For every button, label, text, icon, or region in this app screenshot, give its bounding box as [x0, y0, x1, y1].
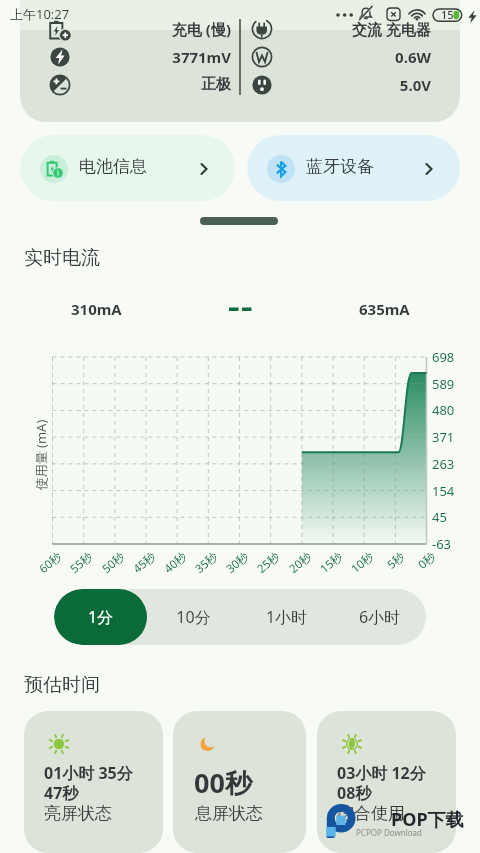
staticText: 263 — [432, 455, 468, 473]
staticText: 综合使用 — [337, 803, 405, 824]
staticText: 15 — [441, 7, 454, 22]
staticText: 蓝牙设备 — [306, 156, 374, 177]
staticText: 635mA — [359, 299, 410, 319]
staticText: PCPOP Download — [356, 827, 422, 838]
staticText: 6小时 — [333, 606, 426, 630]
staticText: 20秒 — [268, 549, 316, 593]
staticText: 310mA — [71, 299, 122, 319]
staticText: 上午10:27 — [10, 5, 70, 23]
staticText: 480 — [432, 401, 468, 419]
staticText: 实时电流 — [24, 246, 100, 270]
staticText: POP下载 — [391, 807, 464, 832]
staticText: 交流 充电器 — [311, 19, 431, 39]
staticText: 40秒 — [143, 549, 191, 593]
button[interactable]: 1分 — [54, 589, 147, 645]
staticText: 50秒 — [81, 549, 129, 593]
staticText: 1分 — [54, 606, 147, 630]
staticText: 0秒 — [392, 549, 440, 593]
staticText: 01小时 35分 47秒 — [44, 762, 133, 804]
button[interactable]: 拖动手柄 — [200, 217, 278, 225]
staticText: 5.0V — [311, 75, 431, 95]
staticText: 亮屏状态 — [44, 803, 112, 824]
staticText: -63 — [432, 535, 468, 553]
staticText: 371 — [432, 428, 468, 446]
staticText: 1小时 — [240, 606, 333, 630]
staticText: 正极 — [111, 75, 231, 95]
staticText: 息屏状态 — [195, 803, 263, 824]
staticText: 45 — [432, 508, 468, 526]
staticText: 45秒 — [112, 549, 160, 593]
staticText: 698 — [432, 348, 468, 366]
button[interactable]: 6小时 — [333, 589, 426, 645]
staticText: 5秒 — [361, 549, 409, 593]
staticText: 25秒 — [236, 549, 284, 593]
staticText: 10秒 — [330, 549, 378, 593]
staticText: 589 — [432, 375, 468, 393]
button[interactable]: 蓝牙设备 — [247, 135, 460, 201]
staticText: 03小时 12分 08秒 — [337, 762, 426, 804]
staticText: 10分 — [147, 606, 240, 630]
button[interactable]: 00秒 — [173, 711, 306, 853]
staticText: 3771mV — [111, 47, 231, 67]
button[interactable]: 03小时 12分 08秒 — [317, 711, 456, 853]
button[interactable]: 电池信息 — [20, 135, 235, 201]
staticText: 154 — [432, 482, 468, 500]
staticText: 35秒 — [174, 549, 222, 593]
staticText: 55秒 — [49, 549, 97, 593]
staticText: 充电 (慢) — [111, 19, 231, 39]
button[interactable]: 1小时 — [240, 589, 333, 645]
staticText: 30秒 — [205, 549, 253, 593]
staticText: 0.6W — [311, 47, 431, 67]
staticText: 预估时间 — [24, 673, 100, 697]
staticText: 15秒 — [299, 549, 347, 593]
button[interactable]: 10分 — [147, 589, 240, 645]
staticText: 60秒 — [18, 549, 66, 593]
staticText: 使用量 (mA) — [32, 405, 52, 505]
button[interactable]: 01小时 35分 47秒 — [24, 711, 163, 853]
staticText: 电池信息 — [79, 156, 147, 177]
staticText: 00秒 — [194, 764, 252, 801]
